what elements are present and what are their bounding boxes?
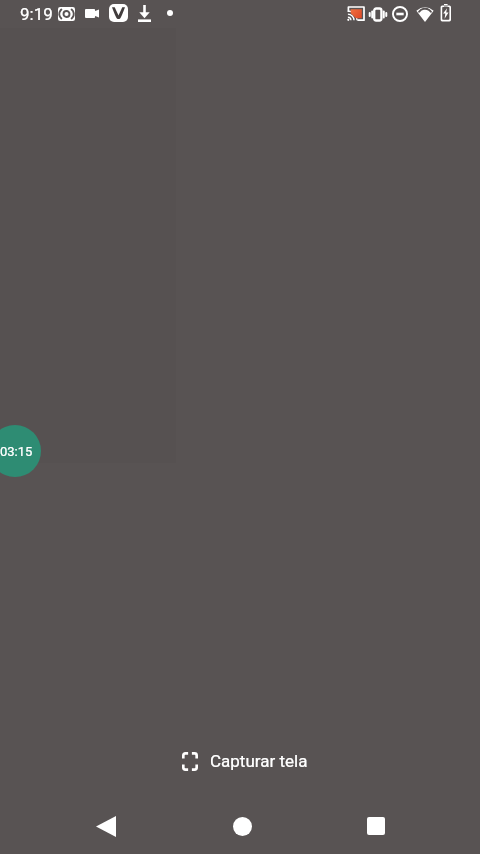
button[interactable]: Capturar tela	[182, 751, 308, 771]
staticText: 03:15	[0, 444, 33, 459]
button[interactable]: Back	[78, 804, 134, 848]
staticText: Capturar tela	[210, 751, 308, 771]
button[interactable]: Recents	[348, 804, 404, 848]
button[interactable]: Home	[214, 804, 270, 848]
button[interactable]: Recording timer	[0, 425, 41, 477]
staticText: 9:19	[20, 4, 53, 24]
